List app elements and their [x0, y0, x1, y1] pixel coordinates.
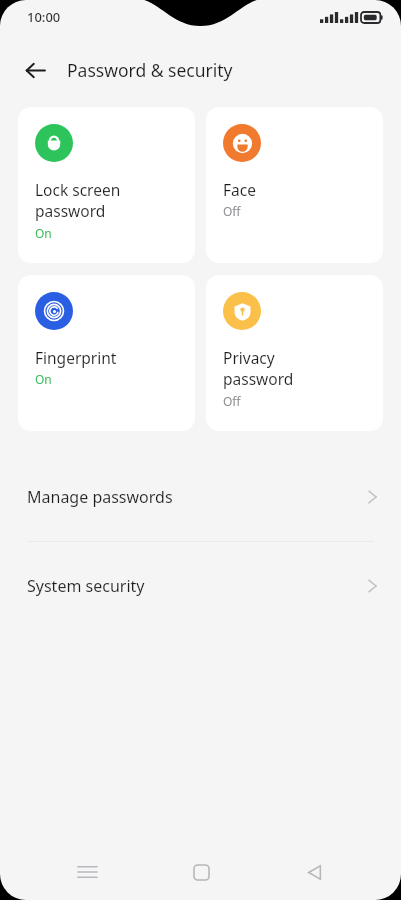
staticText: On	[35, 371, 52, 387]
staticText: Privacy password	[223, 347, 294, 390]
staticText: System security	[27, 575, 145, 597]
staticText: Face	[223, 179, 256, 200]
staticText: Off	[223, 393, 241, 409]
button[interactable]: Privacy password	[206, 275, 383, 431]
staticText: On	[35, 225, 52, 241]
button[interactable]: Home	[174, 845, 228, 899]
button[interactable]: Face	[206, 107, 383, 263]
staticText: Off	[223, 203, 241, 219]
button[interactable]: Lock screen password	[18, 107, 195, 263]
button[interactable]: Recent apps	[60, 845, 114, 899]
button[interactable]: Back	[15, 50, 55, 90]
staticText: 10:00	[27, 8, 61, 26]
staticText: Lock screen password	[35, 179, 121, 222]
staticText: Manage passwords	[27, 486, 173, 508]
button[interactable]: Manage passwords	[0, 453, 401, 541]
button[interactable]: Back	[287, 845, 341, 899]
button[interactable]: Fingerprint	[18, 275, 195, 431]
button[interactable]: System security	[0, 542, 401, 630]
staticText: Password & security	[67, 58, 233, 82]
staticText: Fingerprint	[35, 347, 117, 368]
